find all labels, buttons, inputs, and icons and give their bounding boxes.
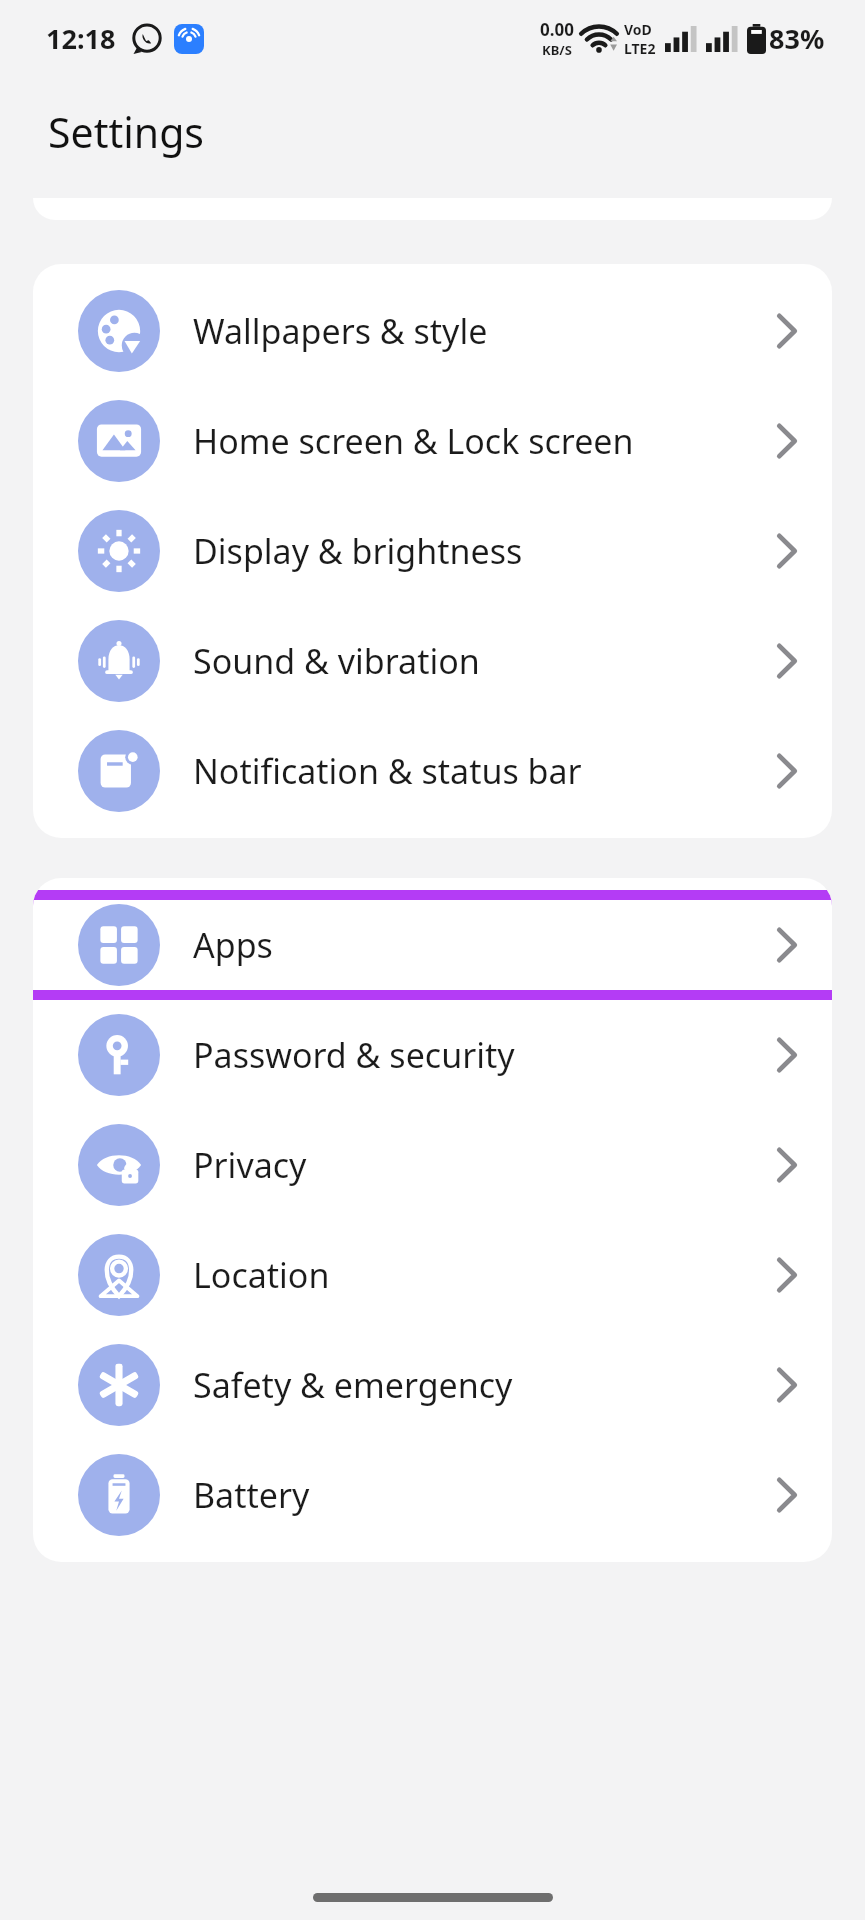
- staticText: Apps: [193, 922, 273, 968]
- button[interactable]: Safety & emergency: [33, 1330, 832, 1440]
- button[interactable]: Display & brightness: [33, 496, 832, 606]
- button[interactable]: Battery: [33, 1440, 832, 1550]
- staticText: Wallpapers & style: [193, 308, 488, 354]
- staticText: 0.00: [540, 18, 574, 41]
- staticText: Privacy: [193, 1142, 307, 1188]
- staticText: 83%: [769, 20, 825, 57]
- staticText: VoD: [624, 20, 652, 39]
- staticText: Battery: [193, 1472, 310, 1518]
- staticText: Notification & status bar: [193, 748, 582, 794]
- staticText: Safety & emergency: [193, 1362, 513, 1408]
- staticText: Location: [193, 1252, 330, 1298]
- staticText: Home screen & Lock screen: [193, 418, 634, 464]
- staticText: Settings: [48, 104, 205, 160]
- button[interactable]: Notification & status bar: [33, 716, 832, 826]
- button[interactable]: Privacy: [33, 1110, 832, 1220]
- button[interactable]: Home screen & Lock screen: [33, 386, 832, 496]
- button[interactable]: Sound & vibration: [33, 606, 832, 716]
- staticText: LTE2: [624, 39, 656, 58]
- button[interactable]: Location: [33, 1220, 832, 1330]
- button[interactable]: Apps: [33, 900, 832, 990]
- staticText: 12:18: [46, 20, 116, 57]
- button[interactable]: Wallpapers & style: [33, 276, 832, 386]
- staticText: KB/S: [542, 41, 572, 59]
- button[interactable]: Password & security: [33, 1000, 832, 1110]
- staticText: Password & security: [193, 1032, 515, 1078]
- staticText: Display & brightness: [193, 528, 523, 574]
- staticText: Sound & vibration: [193, 638, 480, 684]
